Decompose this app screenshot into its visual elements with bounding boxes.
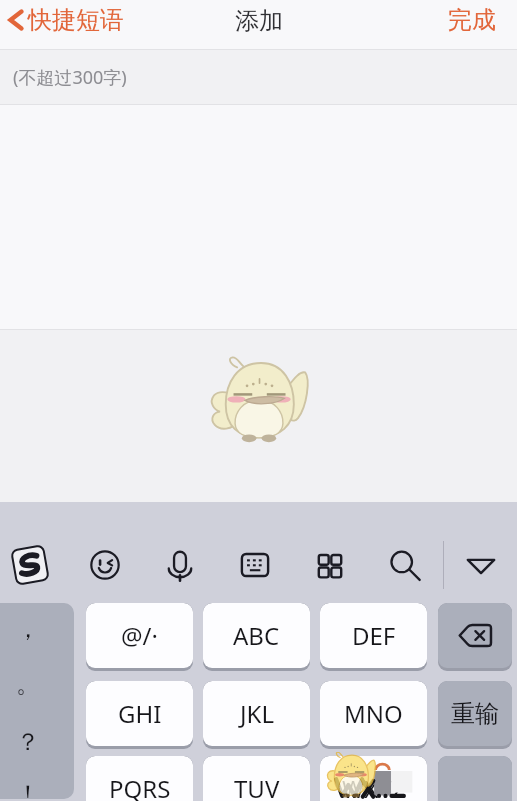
staticText: ！ — [16, 779, 40, 799]
staticText: ABC — [233, 619, 280, 652]
staticText: 添加 — [235, 6, 283, 36]
staticText: ？ — [16, 727, 40, 757]
staticText: MNO — [344, 697, 403, 730]
button[interactable]: ， — [0, 603, 74, 799]
staticText: @/· — [121, 619, 158, 652]
staticText: ， — [16, 614, 40, 644]
button[interactable]: Panel — [300, 534, 360, 596]
button[interactable]: Sogou input method — [0, 534, 60, 596]
button[interactable]: MNO — [320, 681, 427, 749]
button[interactable]: DEF — [320, 603, 427, 671]
staticText: PQRS — [109, 772, 171, 801]
button[interactable]: Search — [374, 534, 434, 596]
button[interactable]: TUV — [203, 756, 310, 801]
staticText: 完成 — [448, 5, 496, 35]
button[interactable]: Voice input — [150, 534, 210, 596]
button[interactable]: 快捷短语 — [0, 0, 134, 39]
staticText: GHI — [118, 697, 162, 730]
staticText: DEF — [352, 619, 396, 652]
button[interactable]: Backspace — [438, 603, 512, 671]
button[interactable]: PQRS — [86, 756, 193, 801]
button[interactable]: 完成 — [430, 0, 517, 39]
button[interactable]: WXYZ — [320, 756, 427, 801]
staticText: 快捷短语 — [28, 5, 124, 35]
button[interactable]: JKL — [203, 681, 310, 749]
staticText: JKL — [240, 697, 274, 730]
button[interactable]: 重输 — [438, 681, 512, 749]
button[interactable]: Hide keyboard — [451, 534, 511, 596]
staticText: WXYZ — [342, 772, 406, 801]
button[interactable]: GHI — [86, 681, 193, 749]
staticText: TUV — [234, 772, 280, 801]
staticText: (不超过300字) — [13, 65, 127, 90]
button[interactable]: ABC — [203, 603, 310, 671]
button[interactable] — [438, 756, 512, 801]
button[interactable]: Keyboard layout — [225, 534, 285, 596]
staticText: 重输 — [451, 699, 499, 729]
button[interactable]: Emoji — [75, 534, 135, 596]
button[interactable]: @/· — [86, 603, 193, 671]
staticText: 。 — [16, 669, 40, 699]
